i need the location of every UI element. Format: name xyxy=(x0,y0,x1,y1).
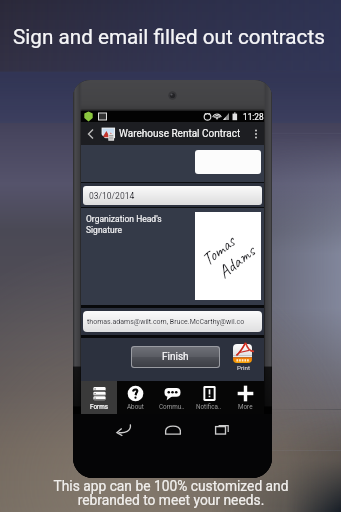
staticText: Adams xyxy=(213,240,261,284)
button[interactable]: More options xyxy=(248,122,264,145)
button[interactable] xyxy=(195,150,261,174)
staticText: Print xyxy=(237,364,250,371)
staticText: 11:28 xyxy=(243,112,264,122)
staticText: thomas.adams@wilt.com, Bruce.McCarthy@wi… xyxy=(87,318,245,326)
staticText: Sign and email filled out contracts xyxy=(13,25,325,49)
button[interactable]: About xyxy=(117,381,153,414)
button[interactable]: thomas.adams@wilt.com, Bruce.McCarthy@wi… xyxy=(83,311,262,332)
staticText: Commu.. xyxy=(159,403,185,410)
button[interactable]: Commu.. xyxy=(153,381,190,414)
button[interactable]: 03/10/2014 xyxy=(83,186,262,205)
staticText: Warehouse Rental Contract xyxy=(119,128,248,140)
button[interactable]: Tomas xyxy=(195,212,261,300)
staticText: Organization Head's xyxy=(86,214,162,224)
staticText: More xyxy=(238,403,253,410)
button[interactable]: Recent apps xyxy=(210,417,234,441)
button[interactable]: Back xyxy=(111,417,135,441)
staticText: Finish xyxy=(162,351,189,363)
button[interactable]: Finish xyxy=(132,347,219,367)
staticText: About xyxy=(127,403,144,410)
staticText: Forms xyxy=(90,403,108,410)
button[interactable]: Home xyxy=(161,417,185,441)
staticText: This app can be 100% customized and rebr… xyxy=(53,478,289,509)
button[interactable]: Notifica.. xyxy=(190,381,227,414)
button[interactable]: More xyxy=(227,381,264,414)
staticText: Tomas xyxy=(197,230,241,271)
staticText: 03/10/2014 xyxy=(89,191,135,201)
button[interactable]: Back xyxy=(81,122,100,145)
staticText: Notifica.. xyxy=(196,403,222,410)
button[interactable]: Print xyxy=(227,342,259,371)
staticText: Signature xyxy=(86,225,122,235)
button[interactable]: Forms xyxy=(81,381,117,414)
